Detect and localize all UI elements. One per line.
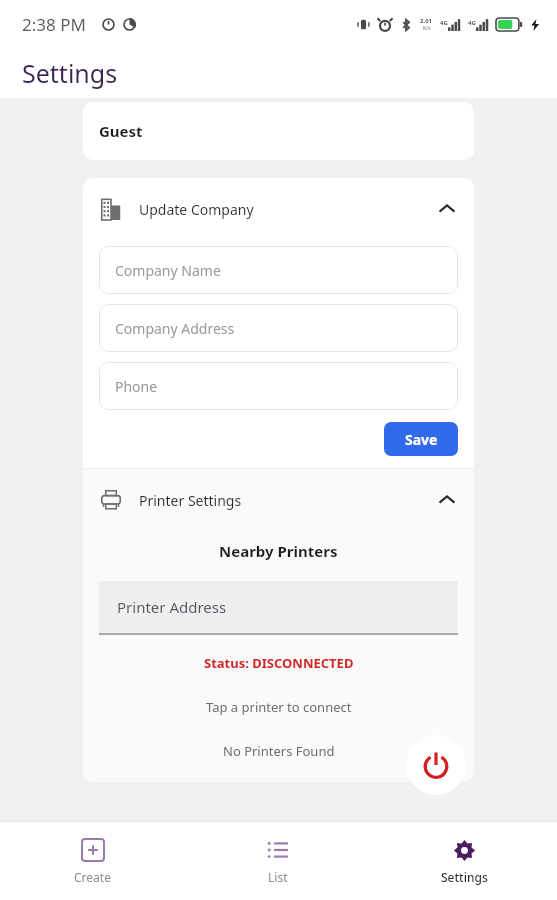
button[interactable]: Printer Settings <box>83 469 474 531</box>
staticText: Company Name <box>115 261 221 280</box>
staticText: Phone <box>115 377 158 396</box>
button[interactable]: Company Name <box>99 246 458 294</box>
button[interactable]: Settings <box>371 822 557 900</box>
button[interactable]: Company Address <box>99 304 458 352</box>
staticText: 2,01 <box>420 17 433 25</box>
staticText: 2:38 PM <box>22 13 86 36</box>
staticText: Tap a printer to connect <box>206 698 352 716</box>
button[interactable]: Power <box>406 735 466 795</box>
staticText: Create <box>74 869 111 885</box>
staticText: 4G <box>440 19 448 27</box>
button[interactable]: Printer Address <box>99 581 458 633</box>
button[interactable]: Guest <box>83 102 474 160</box>
staticText: Printer Settings <box>139 491 242 510</box>
button[interactable]: Phone <box>99 362 458 410</box>
button[interactable]: Create <box>0 822 185 900</box>
staticText: Nearby Printers <box>219 541 338 561</box>
staticText: Status: DISCONNECTED <box>204 654 354 672</box>
button[interactable]: List <box>185 822 371 900</box>
button[interactable]: Update Company <box>83 178 474 240</box>
staticText: Guest <box>99 121 143 141</box>
staticText: Update Company <box>139 200 254 219</box>
staticText: K/s <box>423 25 431 32</box>
staticText: Settings <box>22 56 118 90</box>
button[interactable]: Save <box>384 422 458 456</box>
staticText: No Printers Found <box>223 742 335 760</box>
staticText: List <box>268 869 288 885</box>
staticText: Settings <box>441 869 488 885</box>
staticText: Save <box>405 430 438 449</box>
staticText: 4G <box>468 19 476 27</box>
staticText: Printer Address <box>117 597 227 617</box>
staticText: Company Address <box>115 319 235 338</box>
